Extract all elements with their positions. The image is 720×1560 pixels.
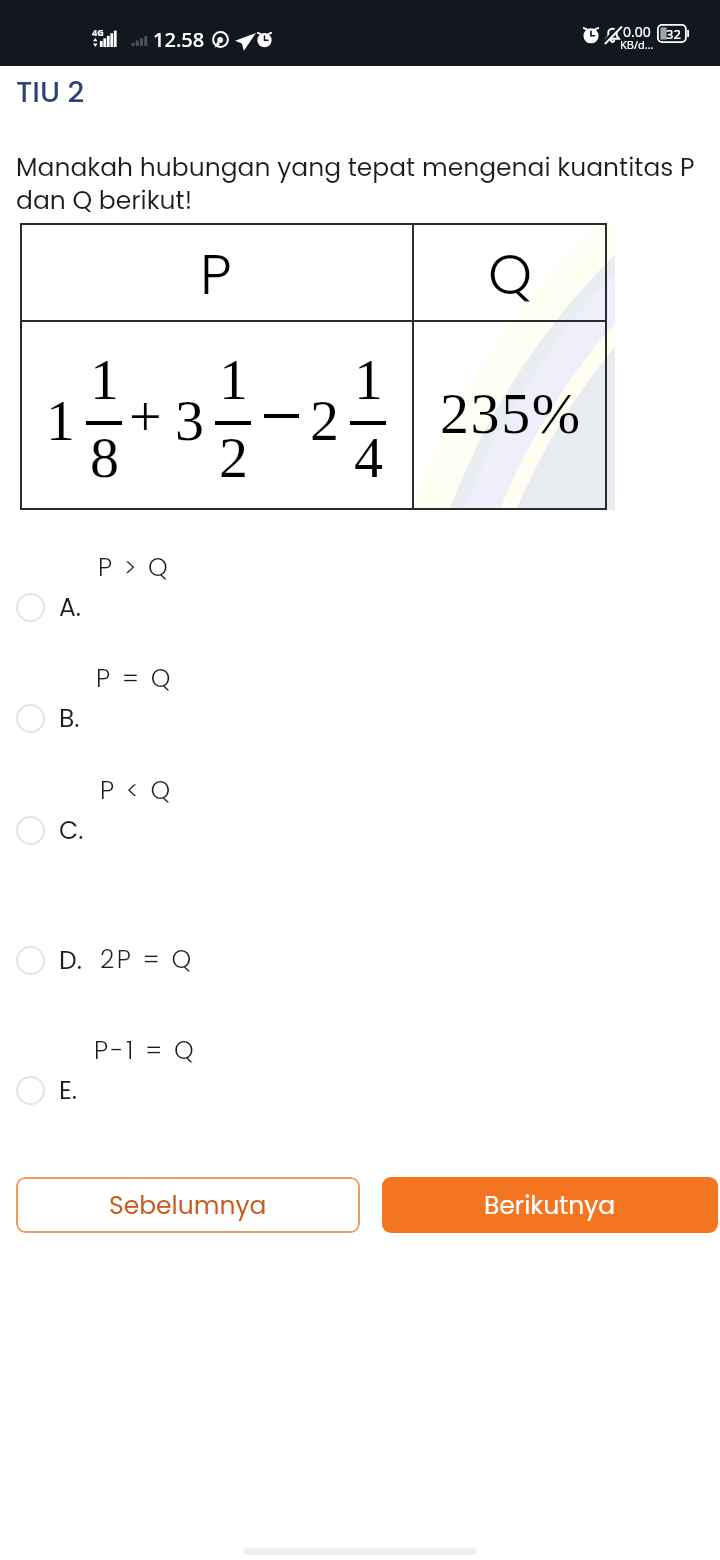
staticText: P-1 = Q (94, 1033, 197, 1068)
staticText: 2 (219, 425, 248, 489)
staticText: C. (59, 813, 84, 848)
staticText: 0.00 (623, 22, 651, 41)
staticText: 4 (354, 425, 383, 489)
staticText: Berikutnya (484, 1188, 616, 1223)
button[interactable]: Berikutnya (382, 1177, 718, 1233)
button[interactable]: E. (0, 1025, 720, 1155)
staticText: Manakah hubungan yang tepat mengenai kua… (16, 150, 706, 218)
button[interactable]: C. (0, 774, 720, 886)
staticText: 12.58 (153, 26, 205, 53)
staticText: TIU 2 (16, 72, 85, 113)
staticText: 1 (46, 388, 75, 452)
staticText: 1 (90, 347, 119, 411)
button[interactable]: D. (0, 895, 720, 1025)
button[interactable]: Sebelumnya (16, 1177, 360, 1233)
staticText: Q (488, 235, 533, 313)
staticText: D. (59, 943, 82, 978)
staticText: E. (59, 1073, 78, 1108)
button[interactable]: A. (0, 552, 720, 663)
staticText: KB/d… (620, 37, 654, 52)
staticText: A. (59, 590, 82, 625)
staticText: 8 (90, 425, 119, 489)
staticText: 2P = Q (100, 942, 194, 977)
staticText: 32 (666, 25, 681, 43)
staticText: P > Q (98, 550, 171, 585)
staticText: 3 (175, 388, 204, 452)
staticText: 1 (219, 347, 248, 411)
staticText: 2 (310, 388, 339, 452)
button[interactable]: B. (0, 663, 720, 774)
staticText: + (129, 384, 159, 448)
staticText: B. (59, 701, 80, 736)
staticText: P (200, 235, 232, 313)
staticText: Sebelumnya (109, 1188, 267, 1223)
staticText: 1 (354, 347, 383, 411)
staticText: P < Q (100, 773, 173, 808)
staticText: P = Q (96, 661, 173, 696)
staticText: 4G (92, 26, 104, 38)
staticText: 235% (440, 381, 582, 445)
